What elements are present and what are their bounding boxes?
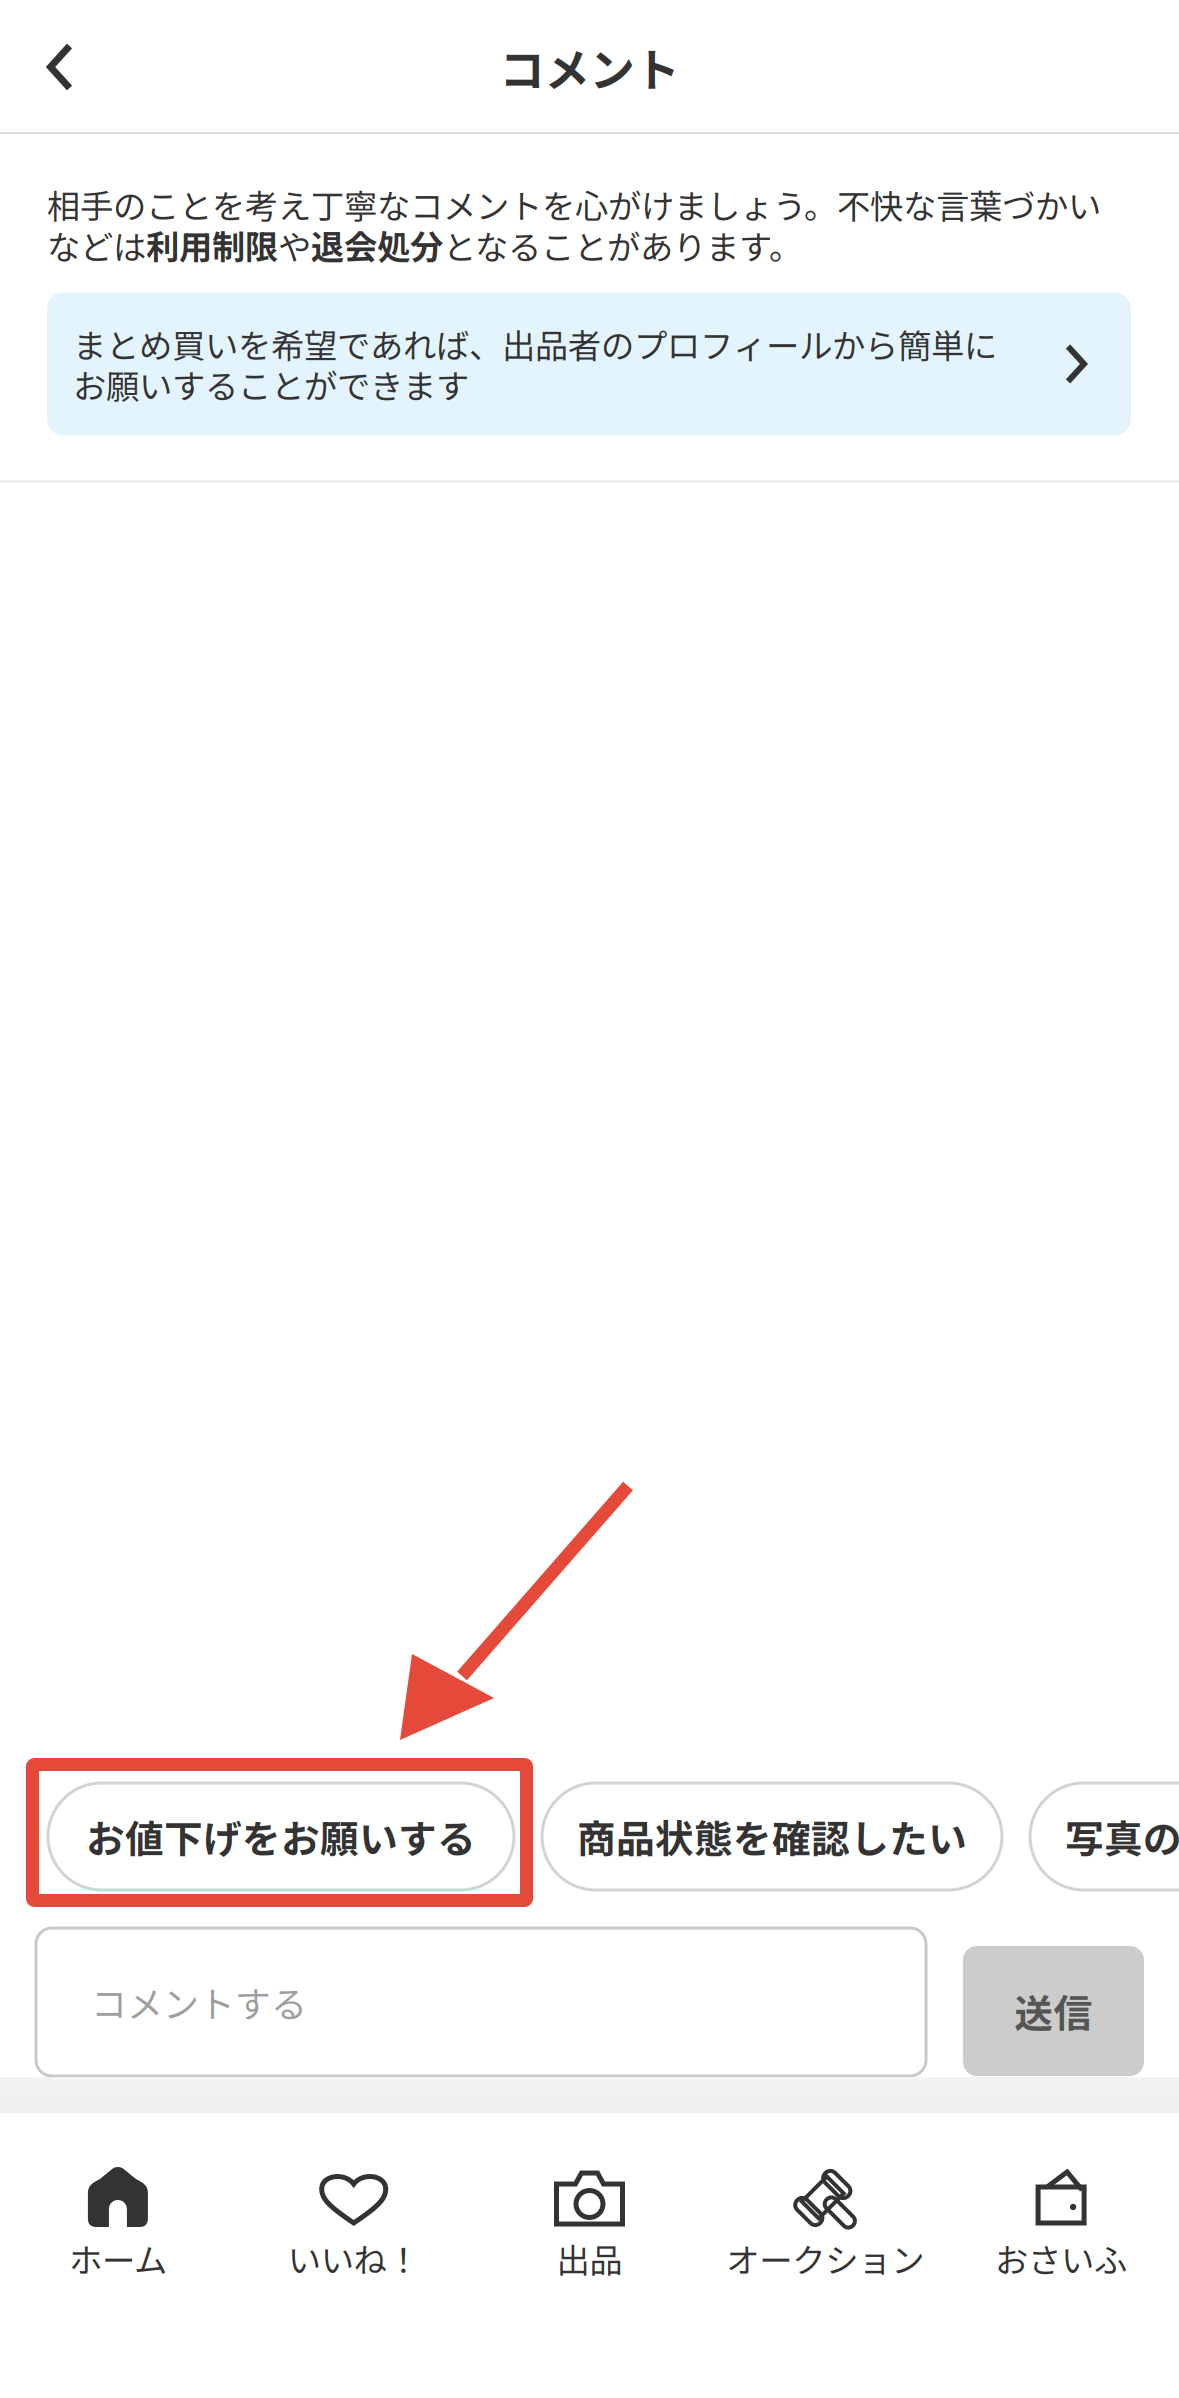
staticText: コメント: [499, 39, 679, 94]
staticText: オークション: [726, 2238, 924, 2278]
staticText: コメントする: [91, 1980, 307, 2024]
staticText: おさいふ: [995, 2238, 1127, 2278]
staticText: お値下げをお願いする: [86, 1813, 476, 1860]
staticText: まとめ買いを希望であれば、出品者のプロフィールから簡単にお願いすることができます: [73, 323, 997, 404]
button[interactable]: おさいふ: [943, 2167, 1179, 2278]
button[interactable]: 商品状態を確認したい: [542, 1783, 1002, 1890]
button[interactable]: 送信: [963, 1946, 1144, 2076]
staticText: 写真の追加をお願いしたい: [1065, 1813, 1179, 1860]
staticText: 送信: [1014, 1987, 1092, 2034]
button[interactable]: ホーム: [0, 2167, 236, 2278]
staticText: いいね！: [288, 2238, 420, 2278]
button[interactable]: いいね！: [236, 2167, 472, 2278]
staticText: 商品状態を確認したい: [577, 1813, 967, 1860]
button[interactable]: まとめ買いを希望であれば、出品者のプロフィールから簡単にお願いすることができます: [47, 292, 1131, 435]
button[interactable]: Back: [0, 0, 120, 134]
button[interactable]: オークション: [707, 2167, 943, 2278]
button[interactable]: お値下げをお願いする: [48, 1783, 514, 1890]
button[interactable]: 出品: [472, 2167, 707, 2278]
button[interactable]: 写真の追加をお願いしたい: [1030, 1783, 1179, 1890]
staticText: ホーム: [69, 2238, 167, 2278]
staticText: 相手のことを考え丁寧なコメントを心がけましょう。不快な言葉づかいなどは利用制限や…: [47, 184, 1101, 265]
staticText: 出品: [556, 2238, 622, 2278]
